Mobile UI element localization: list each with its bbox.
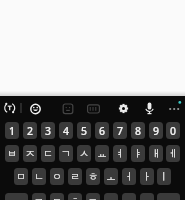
button[interactable] [2, 100, 18, 116]
button[interactable] [157, 193, 180, 200]
staticText: ㅓ [124, 170, 134, 183]
staticText: ㄱ [61, 147, 71, 160]
button[interactable]: 6 [95, 122, 109, 139]
button[interactable]: ㅣ [157, 168, 171, 185]
button[interactable] [28, 101, 43, 116]
button[interactable]: 5 [77, 122, 91, 139]
button[interactable]: ㄱ [59, 145, 73, 162]
button[interactable]: 4 [59, 122, 73, 139]
staticText: ㅐ [151, 147, 161, 160]
button[interactable]: ㅈ [23, 145, 37, 162]
button[interactable]: ㅅ [77, 145, 91, 162]
button[interactable]: 0 [166, 122, 180, 139]
staticText: ㅔ [168, 147, 178, 160]
staticText: ㅁ [16, 170, 26, 183]
staticText: ㅇ [52, 170, 62, 183]
button[interactable]: ㅊ [68, 193, 82, 200]
button[interactable]: 9 [149, 122, 163, 139]
button[interactable]: ㅇ [50, 168, 64, 185]
button[interactable]: 7 [113, 122, 127, 139]
button[interactable]: ㅜ [122, 193, 136, 200]
staticText: 2 [27, 124, 34, 138]
staticText: ㄴ [34, 170, 44, 183]
staticText: ㅍ [88, 195, 98, 200]
button[interactable]: ㅂ [5, 145, 19, 162]
button[interactable]: ㅑ [131, 145, 145, 162]
staticText: ㄹ [70, 170, 80, 183]
button[interactable]: ㅐ [149, 145, 163, 162]
staticText: ㅣ [159, 170, 169, 183]
button[interactable]: ㅗ [104, 168, 118, 185]
staticText: 1 [9, 124, 16, 138]
staticText: ㅈ [25, 147, 35, 160]
staticText: ㅊ [70, 195, 80, 200]
staticText: 8 [135, 124, 142, 138]
staticText: ㅑ [133, 147, 143, 160]
button[interactable]: 8 [131, 122, 145, 139]
staticText: ㅕ [115, 147, 125, 160]
button[interactable]: ㅠ [104, 193, 118, 200]
button[interactable]: ㄷ [41, 145, 55, 162]
button[interactable] [166, 99, 183, 114]
staticText: ㅅ [79, 147, 89, 160]
button[interactable]: 1 [5, 122, 19, 139]
staticText: 9 [153, 124, 160, 138]
button[interactable]: ㄴ [32, 168, 46, 185]
staticText: ㅗ [106, 170, 116, 183]
staticText: ㅏ [142, 170, 152, 183]
button[interactable]: 2 [23, 122, 37, 139]
staticText: 7 [117, 124, 124, 138]
staticText: ㅎ [88, 170, 98, 183]
button[interactable] [86, 101, 101, 116]
staticText: ㅛ [97, 147, 107, 160]
staticText: ㄷ [43, 147, 53, 160]
button[interactable]: ㅍ [86, 193, 100, 200]
button[interactable]: ㅡ [140, 193, 154, 200]
button[interactable]: ㅌ [50, 193, 64, 200]
button[interactable]: ㅕ [113, 145, 127, 162]
staticText: 0 [170, 124, 177, 138]
button[interactable]: ㅏ [140, 168, 154, 185]
staticText: ㅂ [7, 147, 17, 160]
button[interactable]: ㅋ [32, 193, 46, 200]
staticText: ㅌ [52, 195, 62, 200]
button[interactable] [142, 101, 157, 116]
button[interactable]: ㅛ [95, 145, 109, 162]
staticText: 3 [45, 124, 52, 138]
button[interactable] [5, 193, 28, 200]
button[interactable]: ㄹ [68, 168, 82, 185]
button[interactable]: 3 [41, 122, 55, 139]
button[interactable]: ㅔ [166, 145, 180, 162]
button[interactable] [116, 101, 131, 116]
staticText: ㅋ [34, 195, 44, 200]
staticText: 4 [63, 124, 70, 138]
button[interactable] [61, 101, 75, 116]
staticText: 5 [81, 124, 88, 138]
button[interactable]: ㅓ [122, 168, 136, 185]
button[interactable]: ㅁ [14, 168, 28, 185]
button[interactable]: ㅎ [86, 168, 100, 185]
staticText: 6 [99, 124, 106, 138]
